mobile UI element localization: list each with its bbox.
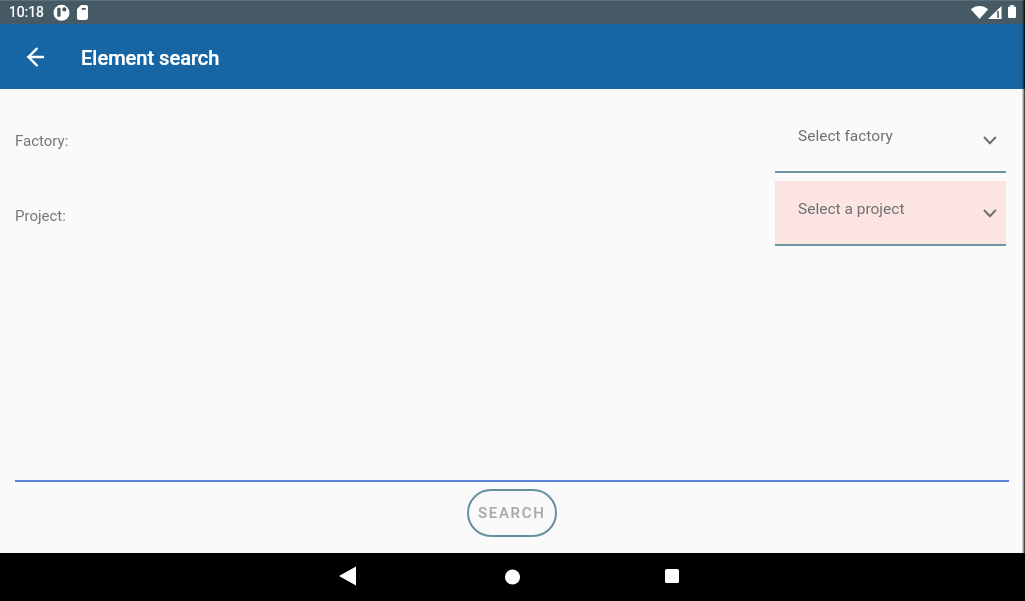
staticText: Select factory xyxy=(798,127,893,145)
button[interactable]: SEARCH xyxy=(467,489,557,537)
button[interactable] xyxy=(488,553,536,601)
button[interactable] xyxy=(324,553,372,601)
button[interactable]: Select factory xyxy=(775,108,1006,172)
staticText: Element search xyxy=(81,46,220,69)
staticText: Project: xyxy=(15,207,66,225)
button[interactable] xyxy=(648,553,696,601)
button[interactable] xyxy=(12,33,60,81)
staticText: Factory: xyxy=(15,132,69,150)
staticText: SEARCH xyxy=(478,504,546,522)
staticText: 10:18 xyxy=(9,4,44,20)
staticText: Select a project xyxy=(798,200,905,218)
button[interactable]: Select a project xyxy=(775,181,1006,245)
